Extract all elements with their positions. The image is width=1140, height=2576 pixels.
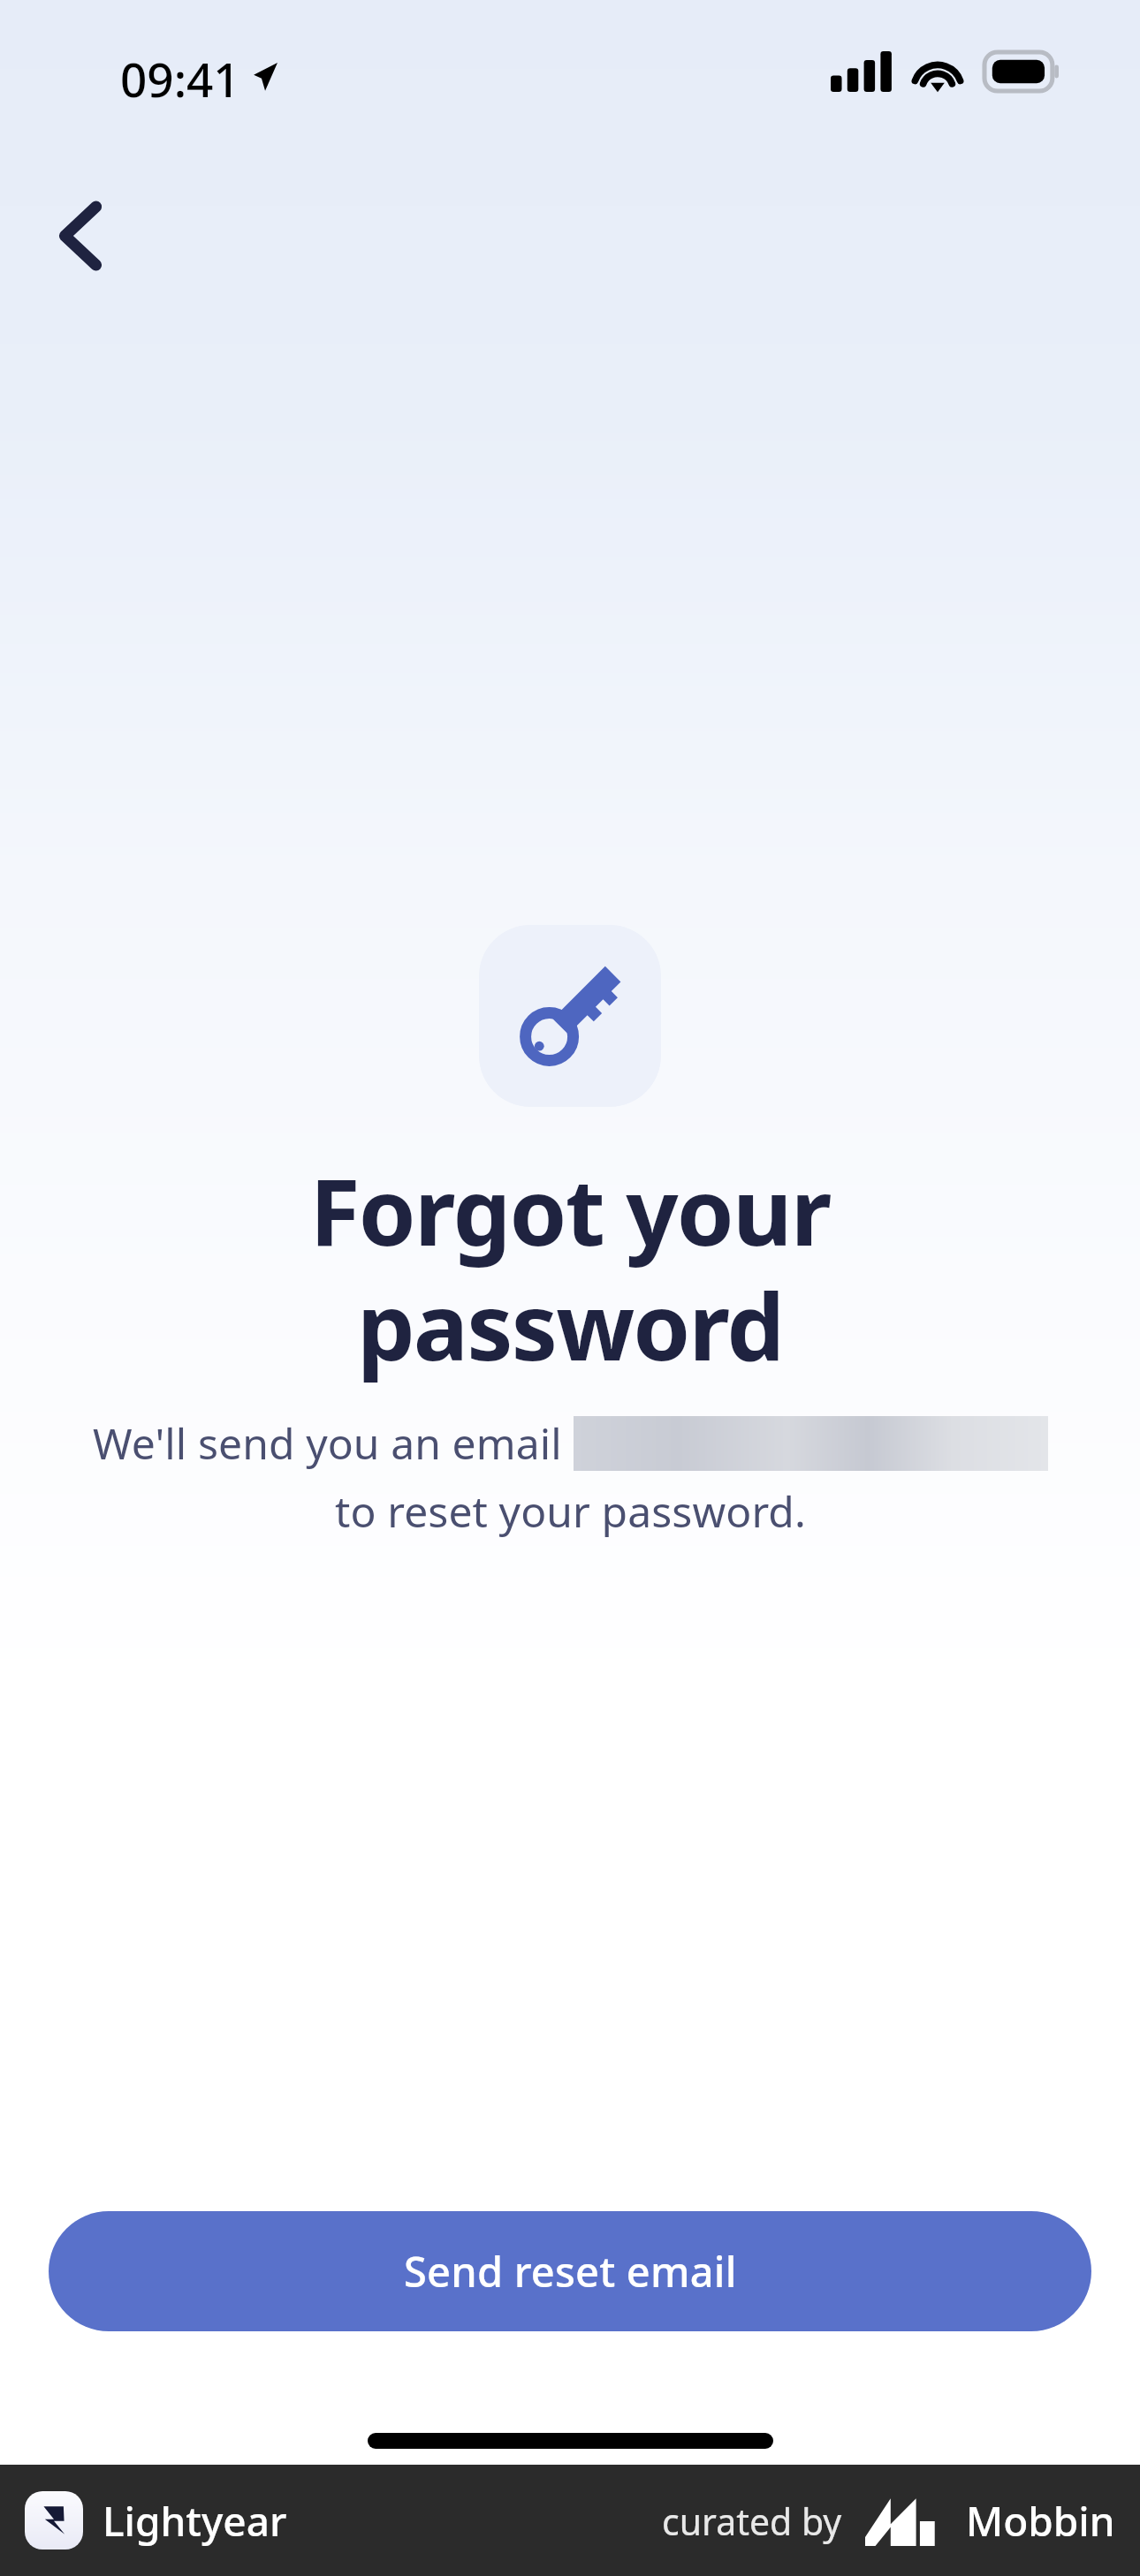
staticText: curated by [662, 2496, 842, 2546]
staticText: Lightyear [103, 2493, 287, 2549]
button[interactable]: Send reset email [49, 2211, 1091, 2331]
staticText: We'll send you an email [93, 1414, 574, 1472]
staticText: to reset your password. [335, 1482, 806, 1540]
staticText: Mobbin [966, 2493, 1115, 2549]
staticText: Send reset email [404, 2243, 737, 2299]
staticText: Forgot your password [309, 1148, 831, 1388]
staticText: 09:41 [120, 47, 240, 110]
button[interactable]: Back [32, 187, 129, 284]
